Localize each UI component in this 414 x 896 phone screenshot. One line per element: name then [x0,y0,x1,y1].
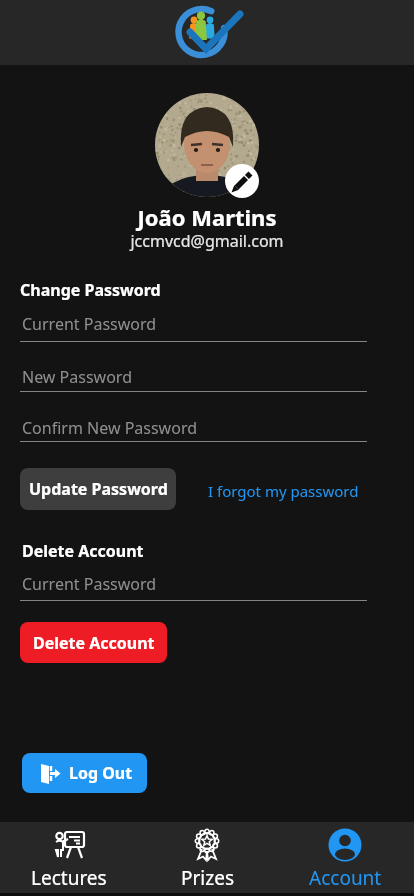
staticText: Confirm New Password [22,417,198,439]
button[interactable] [155,93,259,197]
button[interactable]: Update Password [20,468,176,510]
staticText: jccmvcd@gmail.com [0,230,414,252]
staticText: Update Password [29,478,168,500]
staticText: Prizes [181,865,234,891]
staticText: Delete Account [22,540,144,562]
staticText: Lectures [31,865,107,891]
button[interactable]: Account [276,822,414,896]
button[interactable]: Lectures [0,822,138,896]
staticText: I forgot my password [208,481,359,501]
staticText: Account [309,865,382,891]
button[interactable] [225,164,259,198]
staticText: New Password [22,366,132,388]
staticText: João Martins [0,202,414,232]
staticText: Change Password [20,279,161,301]
button[interactable]: Log Out [22,753,147,793]
button[interactable]: New Password [20,366,367,392]
button[interactable]: Delete Account [20,622,167,663]
button[interactable]: Confirm New Password [20,417,367,442]
staticText: Log Out [69,762,133,784]
button[interactable]: Prizes [138,822,276,896]
staticText: Current Password [22,313,157,335]
staticText: Delete Account [33,632,155,654]
button[interactable]: I forgot my password [200,475,367,507]
staticText: Current Password [22,573,157,595]
button[interactable]: Current Password [20,313,367,342]
button[interactable]: Current Password [20,573,367,601]
